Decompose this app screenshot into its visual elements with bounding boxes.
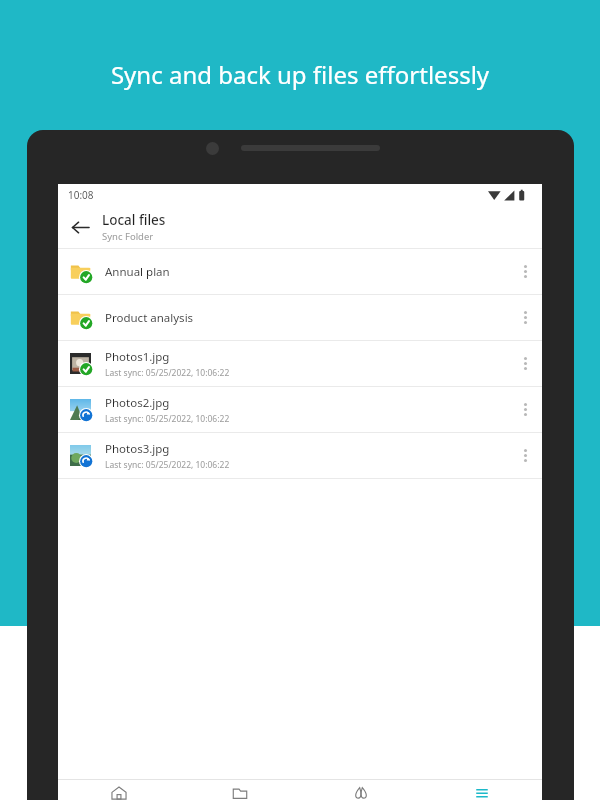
button[interactable]: Photos1.jpg bbox=[58, 341, 542, 386]
staticText: Photos1.jpg bbox=[105, 349, 170, 365]
button[interactable]: Product analysis bbox=[58, 295, 542, 340]
staticText: Sync and back up files effortlessly bbox=[0, 58, 600, 91]
button[interactable]: Shared bbox=[300, 780, 421, 800]
button[interactable]: More options bbox=[508, 295, 542, 340]
staticText: Local files bbox=[102, 211, 166, 229]
button[interactable]: Photos2.jpg bbox=[58, 387, 542, 432]
staticText: Last sync: 05/25/2022, 10:06:22 bbox=[105, 413, 230, 425]
button[interactable]: Photos3.jpg bbox=[58, 433, 542, 478]
button[interactable]: Home bbox=[58, 780, 179, 800]
staticText: Last sync: 05/25/2022, 10:06:22 bbox=[105, 367, 230, 379]
button[interactable]: More options bbox=[508, 249, 542, 294]
button[interactable]: More options bbox=[508, 341, 542, 386]
staticText: Last sync: 05/25/2022, 10:06:22 bbox=[105, 459, 230, 471]
staticText: Annual plan bbox=[105, 264, 170, 280]
button[interactable]: Back bbox=[58, 206, 102, 248]
staticText: Photos2.jpg bbox=[105, 395, 170, 411]
button[interactable]: Annual plan bbox=[58, 249, 542, 294]
button[interactable]: Files bbox=[179, 780, 300, 800]
staticText: Sync Folder bbox=[102, 230, 154, 243]
staticText: 10:08 bbox=[68, 188, 94, 202]
button[interactable]: More bbox=[421, 780, 542, 800]
staticText: Photos3.jpg bbox=[105, 441, 170, 457]
staticText: Product analysis bbox=[105, 310, 194, 326]
button[interactable]: More options bbox=[508, 387, 542, 432]
button[interactable]: More options bbox=[508, 433, 542, 478]
